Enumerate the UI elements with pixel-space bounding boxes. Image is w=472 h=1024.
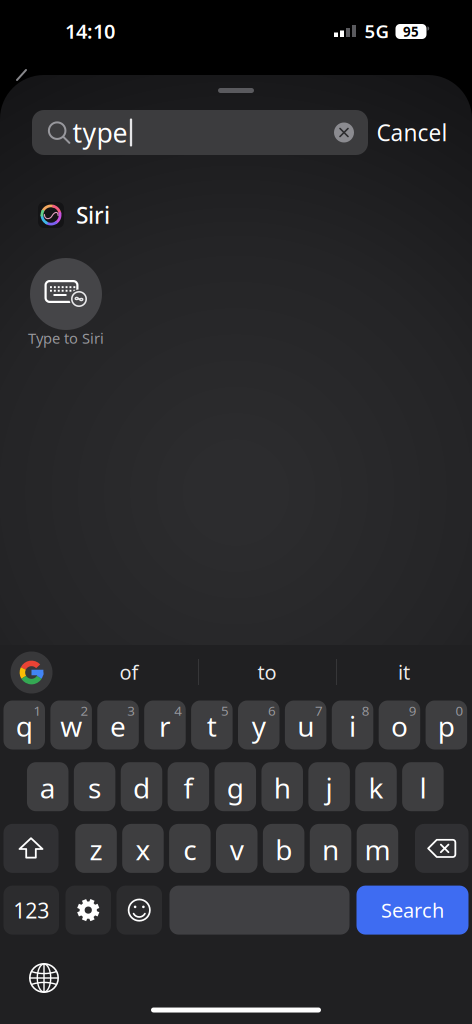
staticText: z — [89, 831, 102, 868]
staticText: p — [438, 707, 455, 745]
staticText: 9 — [409, 702, 417, 719]
staticText: q — [16, 707, 33, 745]
button[interactable]: Clear text — [328, 114, 360, 150]
button[interactable]: Numbers — [3, 886, 59, 935]
button[interactable]: k — [355, 762, 397, 811]
button[interactable]: v — [216, 824, 257, 873]
staticText: a — [40, 769, 56, 806]
button[interactable]: Delete — [415, 824, 468, 873]
button[interactable]: h — [261, 762, 303, 811]
staticText: w — [60, 707, 82, 745]
button[interactable]: m — [357, 824, 398, 873]
staticText: i — [349, 707, 356, 745]
button[interactable]: g — [214, 762, 256, 811]
staticText: Cancel — [376, 117, 447, 147]
staticText: o — [391, 707, 408, 745]
button[interactable]: l — [402, 762, 444, 811]
staticText: 95 — [403, 23, 419, 40]
staticText: c — [183, 831, 196, 868]
staticText: 3 — [127, 702, 135, 719]
button[interactable]: Search — [32, 110, 368, 155]
button[interactable]: j — [308, 762, 350, 811]
staticText: it — [398, 659, 410, 685]
staticText: t — [207, 707, 217, 745]
staticText: r — [159, 707, 171, 745]
staticText: y — [252, 707, 266, 745]
staticText: 5 — [221, 702, 229, 719]
button[interactable]: Shift — [3, 824, 58, 873]
staticText: d — [133, 769, 150, 806]
staticText: 5G — [364, 19, 389, 43]
staticText: 6 — [268, 702, 276, 719]
button[interactable]: e — [97, 700, 139, 749]
button[interactable]: t — [191, 700, 233, 749]
staticText: m — [364, 831, 390, 868]
button[interactable]: x — [122, 824, 164, 873]
staticText: s — [88, 769, 101, 806]
button[interactable]: a — [27, 762, 68, 811]
button[interactable]: r — [144, 700, 186, 749]
staticText: f — [183, 769, 193, 806]
staticText: x — [135, 831, 150, 868]
button[interactable]: Google Search — [10, 651, 52, 693]
staticText: 1 — [33, 702, 41, 719]
staticText: of — [119, 659, 138, 685]
button[interactable]: s — [74, 762, 115, 811]
button[interactable]: i — [332, 700, 373, 749]
button[interactable]: Siri — [0, 195, 472, 235]
button[interactable]: Emoji — [116, 886, 162, 935]
staticText: h — [274, 769, 291, 806]
staticText: e — [110, 707, 126, 745]
staticText: 7 — [315, 702, 323, 719]
button[interactable]: d — [121, 762, 162, 811]
button[interactable]: f — [168, 762, 209, 811]
staticText: 14:10 — [65, 18, 115, 44]
staticText: v — [230, 831, 244, 868]
staticText: k — [368, 769, 383, 806]
staticText: b — [275, 831, 292, 868]
staticText: j — [326, 769, 333, 806]
staticText: 4 — [174, 702, 182, 719]
staticText: 2 — [80, 702, 88, 719]
button[interactable]: u — [285, 700, 326, 749]
button[interactable]: b — [263, 824, 304, 873]
button[interactable]: n — [310, 824, 351, 873]
staticText: u — [297, 707, 314, 745]
staticText: l — [419, 769, 426, 806]
button[interactable]: it — [344, 650, 464, 694]
button[interactable]: c — [169, 824, 211, 873]
button[interactable]: Settings — [65, 886, 111, 935]
staticText: g — [227, 769, 244, 806]
staticText: 0 — [456, 702, 464, 719]
button[interactable]: of — [69, 650, 189, 694]
button[interactable]: Cancel — [372, 110, 452, 155]
staticText: 8 — [362, 702, 370, 719]
staticText: 123 — [13, 896, 49, 924]
button[interactable]: Search — [356, 886, 468, 935]
button[interactable]: Next keyboard — [19, 956, 69, 1000]
button[interactable]: y — [238, 700, 279, 749]
staticText: type — [72, 115, 127, 150]
staticText: Siri — [76, 200, 110, 230]
button[interactable]: w — [50, 700, 92, 749]
staticText: n — [322, 831, 339, 868]
staticText: Search — [381, 897, 444, 923]
button[interactable]: p — [426, 700, 467, 749]
staticText: Type to Siri — [28, 328, 104, 348]
button[interactable]: z — [75, 824, 117, 873]
button[interactable]: Type to Siri — [0, 250, 132, 346]
button[interactable]: to — [207, 650, 327, 694]
staticText: to — [257, 659, 276, 685]
button[interactable]: q — [3, 700, 45, 749]
button[interactable]: Space — [169, 886, 349, 935]
button[interactable]: o — [379, 700, 420, 749]
